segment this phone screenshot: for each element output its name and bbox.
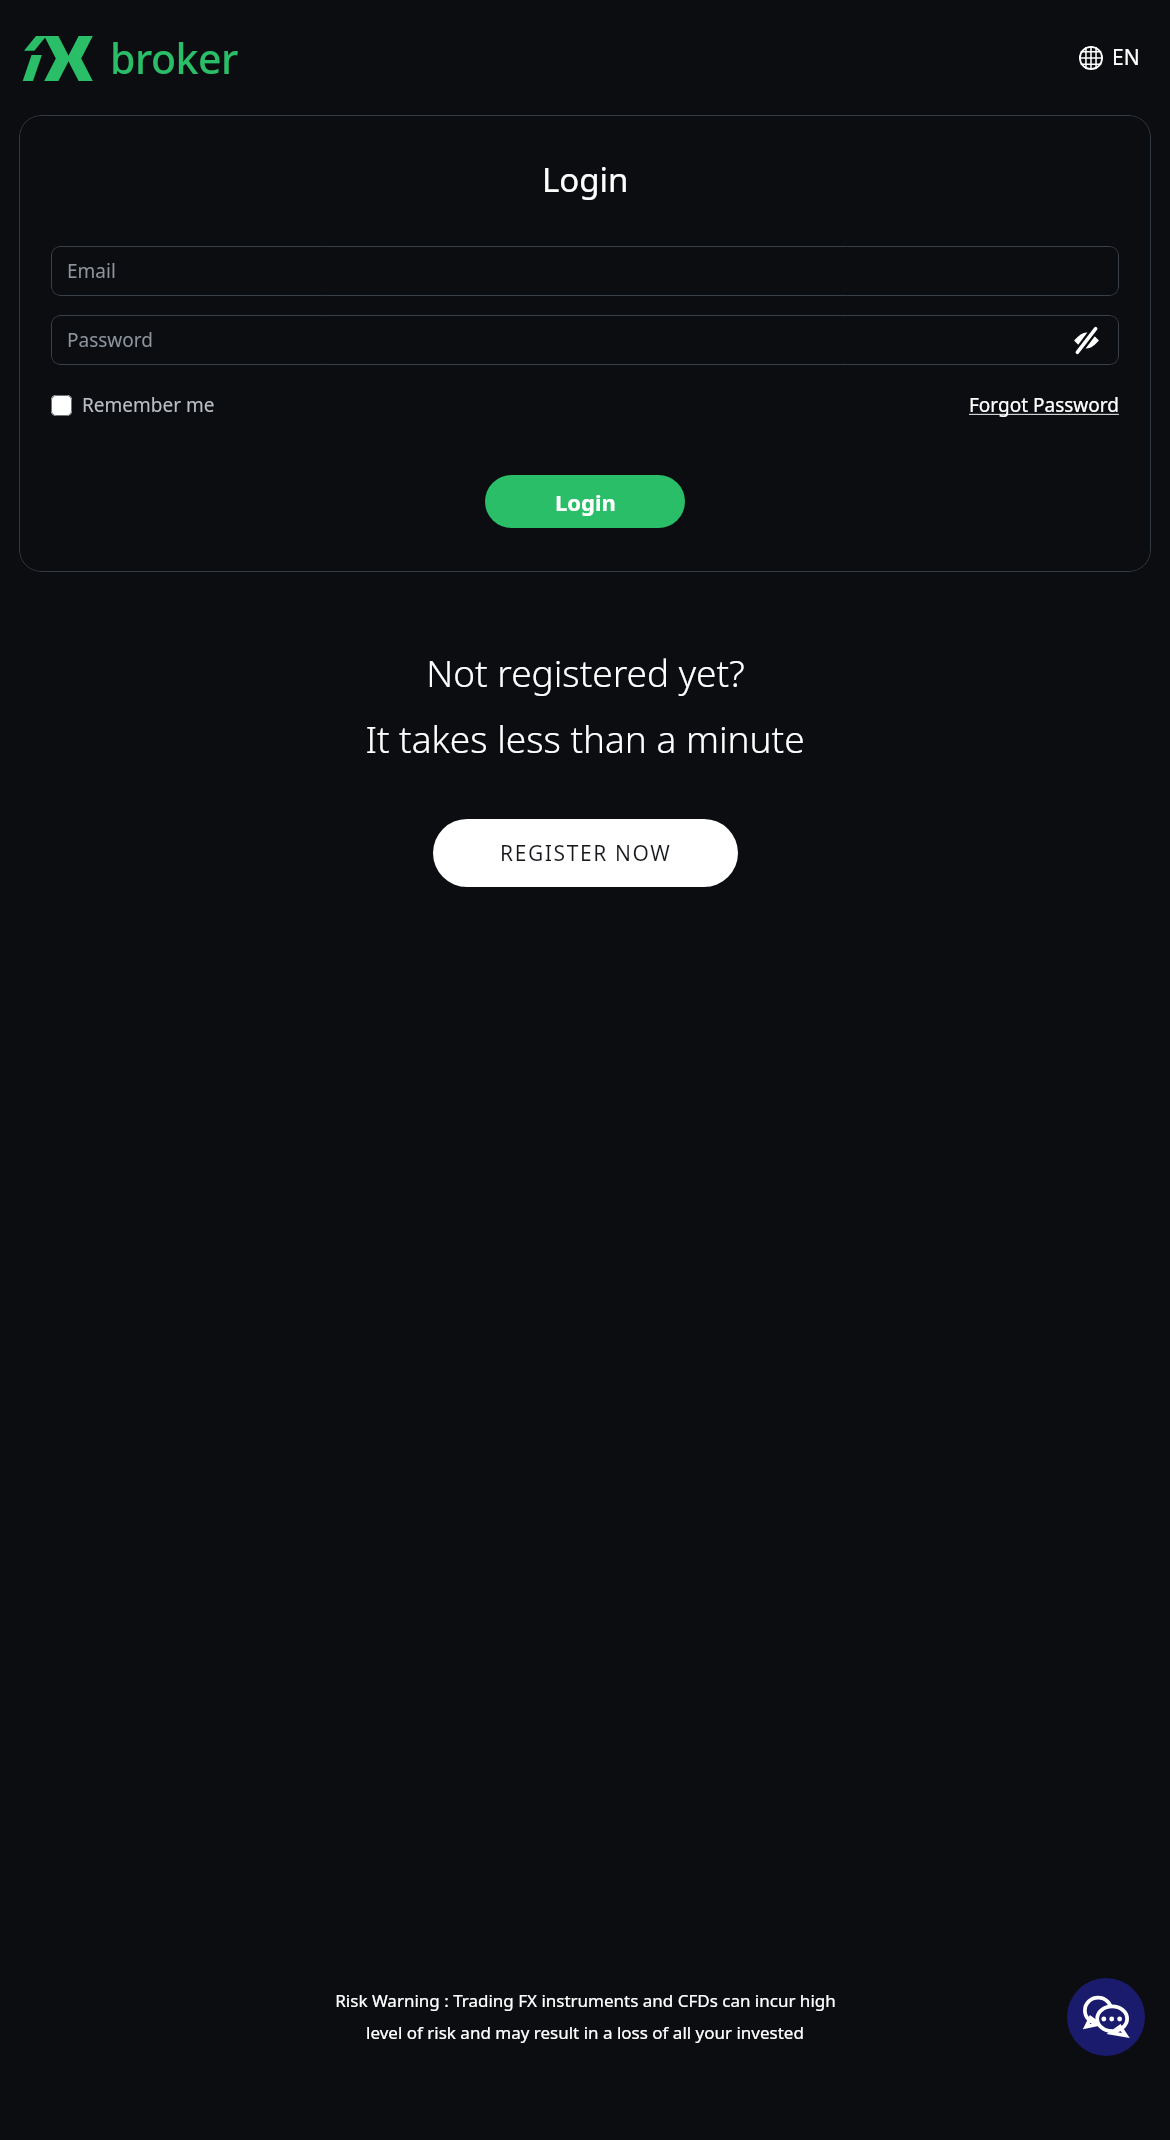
staticText: Login bbox=[542, 157, 629, 202]
button[interactable]: Open chat support bbox=[1067, 1978, 1145, 2056]
staticText: level of risk and may result in a loss o… bbox=[366, 2021, 804, 2044]
button[interactable]: Remember me bbox=[51, 389, 215, 421]
staticText: broker bbox=[110, 30, 238, 86]
button[interactable]: Password bbox=[51, 315, 1119, 365]
staticText: Risk Warning : Trading FX instruments an… bbox=[335, 1989, 836, 2012]
staticText: Password bbox=[67, 327, 153, 353]
button[interactable]: Show password bbox=[1070, 324, 1103, 357]
staticText: Not registered yet? bbox=[426, 647, 745, 697]
button[interactable]: Login bbox=[485, 475, 685, 528]
staticText: EN bbox=[1112, 43, 1140, 72]
button[interactable]: Forgot Password bbox=[969, 389, 1119, 421]
staticText: Login bbox=[555, 487, 616, 517]
staticText: It takes less than a minute bbox=[365, 713, 805, 763]
button[interactable]: Change language, English bbox=[1075, 39, 1144, 76]
staticText: REGISTER NOW bbox=[500, 839, 672, 868]
staticText: Email bbox=[67, 258, 116, 284]
button[interactable]: Email bbox=[51, 246, 1119, 296]
staticText: Remember me bbox=[82, 392, 215, 418]
button[interactable]: REGISTER NOW bbox=[433, 819, 738, 887]
staticText: Forgot Password bbox=[969, 392, 1119, 418]
